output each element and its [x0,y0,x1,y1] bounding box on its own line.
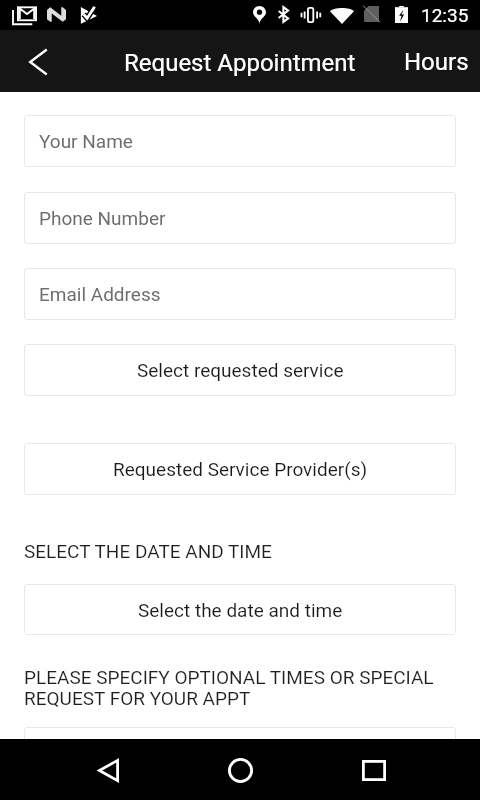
button[interactable]: Hours [393,33,480,89]
button[interactable]: Email Address [24,268,456,320]
button[interactable]: Back [14,38,62,86]
staticText: 12:35 [421,4,469,26]
staticText: Select requested service [137,359,344,381]
button[interactable]: Requested Service Provider(s) [24,443,456,495]
staticText: Requested Service Provider(s) [113,458,368,480]
staticText: Request Appointment [124,49,356,77]
button[interactable]: Phone Number [24,192,456,244]
button[interactable] [24,727,456,779]
button[interactable]: Home [216,746,264,794]
button[interactable]: Select the date and time [24,584,456,635]
staticText: Select the date and time [138,599,343,621]
staticText: PLEASE SPECIFY OPTIONAL TIMES OR SPECIAL… [24,666,434,709]
button[interactable]: Recent apps [350,746,398,794]
button[interactable]: Your Name [24,115,456,167]
staticText: Email Address [39,283,161,305]
button[interactable]: Select requested service [24,344,456,396]
staticText: SELECT THE DATE AND TIME [24,540,272,562]
staticText: Hours [404,48,469,76]
staticText: Your Name [39,130,133,152]
button[interactable]: Back [84,746,132,794]
staticText: Phone Number [39,207,166,229]
